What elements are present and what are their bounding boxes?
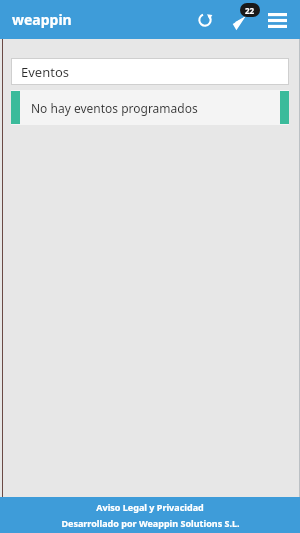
staticText: Desarrollado por Weappin Solutions S.L.	[61, 517, 240, 529]
staticText: 22	[245, 5, 255, 16]
staticText: No hay eventos programados	[31, 100, 198, 116]
button[interactable]: Eventos	[12, 59, 288, 84]
staticText: Aviso Legal y Privacidad	[96, 501, 204, 513]
button[interactable]: Aviso Legal y Privacidad	[0, 501, 300, 513]
button[interactable]: Refresh	[190, 5, 220, 35]
button[interactable]: No hay eventos programados	[11, 90, 289, 125]
button[interactable]: Messages, 22 unread	[226, 3, 260, 37]
staticText: Eventos	[21, 63, 69, 81]
button[interactable]: Menu	[262, 5, 292, 35]
button[interactable]: weappin	[12, 10, 72, 29]
